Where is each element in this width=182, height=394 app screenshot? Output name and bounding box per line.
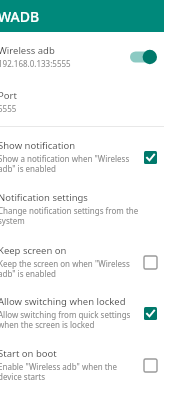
staticText: Show a notification when "Wireless adb" … bbox=[0, 153, 134, 174]
staticText: 192.168.0.133:5555 bbox=[0, 58, 71, 69]
button[interactable]: Wireless adb bbox=[0, 40, 164, 73]
staticText: Show notification bbox=[0, 139, 76, 152]
staticText: Port bbox=[0, 89, 17, 102]
staticText: Notification settings bbox=[0, 191, 88, 204]
other: Allow switching when locked bbox=[140, 303, 160, 323]
staticText: Keep screen on bbox=[0, 244, 67, 257]
button[interactable]: Port bbox=[0, 89, 164, 116]
staticText: Change notification settings from the sy… bbox=[0, 205, 160, 226]
staticText: WADB bbox=[0, 7, 40, 26]
button[interactable]: Notification settings bbox=[0, 191, 164, 226]
other: Show notification bbox=[140, 147, 160, 167]
button[interactable]: Start on boot bbox=[0, 347, 164, 382]
button[interactable]: Keep screen on bbox=[0, 244, 164, 279]
other: Keep screen on bbox=[140, 252, 160, 272]
staticText: 5555 bbox=[0, 103, 17, 114]
other: Wireless adb toggle bbox=[128, 48, 158, 66]
staticText: Keep the screen on when "Wireless adb" i… bbox=[0, 258, 134, 279]
staticText: Wireless adb bbox=[0, 44, 55, 57]
other: Start on boot bbox=[140, 355, 160, 375]
staticText: Enable "Wireless adb" when the device st… bbox=[0, 361, 134, 382]
staticText: Allow switching from quick settings when… bbox=[0, 309, 134, 330]
button[interactable]: Show notification bbox=[0, 139, 164, 174]
staticText: Allow switching when locked bbox=[0, 295, 126, 308]
button[interactable]: Allow switching when locked bbox=[0, 295, 164, 330]
staticText: Start on boot bbox=[0, 347, 57, 360]
